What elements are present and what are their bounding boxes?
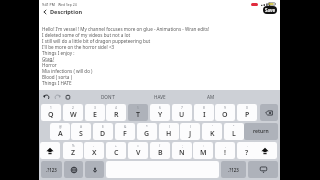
staticText: . — [247, 144, 248, 148]
staticText: I still will do a little bit of dragon p… — [42, 38, 151, 44]
button[interactable]: Paste — [64, 93, 72, 101]
staticText: S — [79, 129, 83, 139]
staticText: .?123 — [228, 167, 239, 173]
button[interactable]: .?123 — [41, 161, 62, 178]
button[interactable]: Save — [263, 6, 277, 14]
button[interactable]: + — [106, 142, 126, 159]
staticText: M — [200, 148, 207, 158]
staticText: R — [114, 110, 119, 120]
button[interactable]: .?123 — [221, 161, 246, 178]
button[interactable]: AM — [187, 90, 235, 103]
staticText: E — [93, 110, 97, 120]
staticText: / — [159, 144, 161, 148]
staticText: .?123 — [46, 167, 57, 173]
button[interactable]: $ — [93, 123, 113, 140]
staticText: Wed Sep 24 — [58, 2, 77, 7]
staticText: ! — [224, 148, 226, 158]
staticText: Z — [71, 148, 76, 158]
staticText: , — [225, 144, 226, 148]
staticText: Gtag/ — [42, 56, 55, 62]
staticText: HAVE — [154, 94, 166, 100]
staticText: X — [92, 148, 97, 158]
button[interactable]: . — [237, 142, 257, 159]
staticText: $ — [102, 125, 104, 129]
staticText: 6 — [159, 106, 161, 110]
staticText: Things I HATE — [42, 80, 72, 86]
button[interactable]: Shift — [40, 142, 60, 159]
button[interactable]: 9 — [215, 104, 235, 121]
staticText: ) — [190, 125, 191, 129]
staticText: 9 — [224, 106, 226, 110]
staticText: Blood ( sorta ) — [42, 74, 73, 80]
staticText: 1 — [50, 106, 52, 110]
button[interactable]: % — [63, 142, 83, 159]
button[interactable]: 7 — [172, 104, 192, 121]
other: Back — [41, 8, 49, 16]
button[interactable]: Emoji — [64, 161, 83, 178]
button[interactable]: = — [128, 142, 148, 159]
staticText: Save — [265, 7, 275, 13]
staticText: U — [179, 110, 185, 120]
button[interactable]: Backspace — [260, 104, 278, 121]
staticText: T — [136, 110, 140, 120]
button[interactable]: Dictation — [85, 161, 104, 178]
staticText: 3 — [94, 106, 96, 110]
staticText: A — [58, 129, 63, 139]
button[interactable]: # — [71, 123, 91, 140]
staticText: Horror — [42, 62, 57, 68]
staticText: & — [124, 125, 127, 129]
button[interactable]: Redo — [53, 92, 62, 101]
button[interactable]: , — [215, 142, 235, 159]
staticText: I — [203, 110, 206, 120]
button[interactable]: * — [137, 123, 157, 140]
button[interactable]: DON'T — [71, 90, 146, 103]
staticText: 9:41 PM — [42, 2, 55, 7]
staticText: H — [166, 129, 172, 139]
staticText: Y — [158, 110, 163, 120]
button[interactable]: - — [84, 142, 104, 159]
staticText: 7 — [181, 106, 183, 110]
button[interactable]: 8 — [194, 104, 214, 121]
button[interactable]: 3 — [85, 104, 105, 121]
button[interactable]: Back — [41, 8, 83, 16]
button[interactable]: ( — [159, 123, 179, 140]
button[interactable]: 6 — [150, 104, 170, 121]
button[interactable]: return — [244, 123, 278, 140]
button[interactable]: 0 — [237, 104, 257, 121]
staticText: O — [222, 110, 228, 120]
staticText: 4 — [115, 106, 117, 110]
button[interactable]: Shift — [253, 142, 277, 159]
button[interactable]: 1 — [41, 104, 61, 121]
button[interactable]: 5 — [128, 104, 148, 121]
button[interactable]: & — [115, 123, 135, 140]
button[interactable]: ' — [202, 123, 222, 140]
staticText: V — [136, 148, 141, 158]
button[interactable]: ; — [172, 142, 192, 159]
staticText: 5 — [137, 106, 139, 110]
button[interactable]: : — [193, 142, 213, 159]
staticText: : — [203, 144, 204, 148]
button[interactable]: ) — [180, 123, 200, 140]
button[interactable]: 2 — [63, 104, 83, 121]
staticText: F — [123, 129, 127, 139]
staticText: + — [115, 144, 117, 148]
staticText: 0 — [246, 106, 248, 110]
button[interactable]: Undo — [42, 92, 51, 101]
button[interactable]: HAVE — [139, 90, 181, 103]
staticText: * — [146, 125, 148, 129]
staticText: Hello! I'm vessel ! My channel focuses m… — [42, 26, 210, 32]
staticText: D — [100, 129, 106, 139]
staticText: I'll be more on the horror side! <3 — [42, 44, 115, 50]
staticText: W — [70, 110, 77, 120]
staticText: " — [233, 125, 235, 129]
staticText: return — [253, 128, 269, 135]
button[interactable]: 4 — [106, 104, 126, 121]
button[interactable]: Hide keyboard — [248, 161, 278, 178]
button[interactable]: " — [224, 123, 244, 140]
button[interactable]: @ — [50, 123, 70, 140]
staticText: Mia infections ( will do ) — [42, 68, 93, 74]
staticText: L — [232, 129, 236, 139]
button[interactable]: / — [150, 142, 170, 159]
staticText: ( — [169, 125, 170, 129]
